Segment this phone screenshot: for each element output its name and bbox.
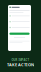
button[interactable]: OUR IMPACT (0, 58, 41, 62)
button[interactable]: TAKE ACTION (0, 62, 41, 67)
button[interactable] (8, 33, 31, 35)
staticText: TAKE ACTION (7, 62, 34, 67)
staticText: OUR IMPACT (11, 58, 29, 62)
